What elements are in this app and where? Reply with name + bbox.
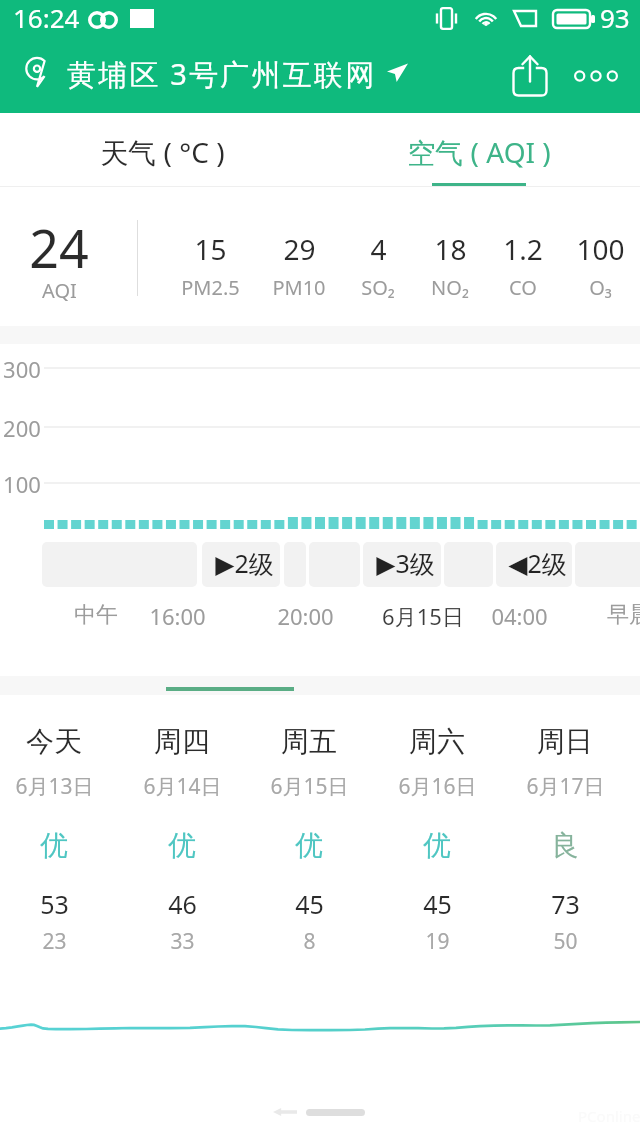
button[interactable]: 天气 ( °C ): [0, 113, 320, 187]
staticText: 周六: [409, 724, 465, 759]
staticText: O₃: [589, 274, 612, 301]
button[interactable]: [501, 700, 629, 965]
staticText: 16:24: [13, 0, 80, 35]
button[interactable]: [0, 700, 118, 965]
staticText: 24: [29, 212, 89, 283]
staticText: 53: [40, 887, 69, 921]
staticText: SO₂: [361, 274, 395, 301]
staticText: CO: [509, 274, 537, 301]
staticText: PM10: [272, 274, 326, 301]
staticText: 6月15日: [382, 601, 464, 631]
staticText: 周日: [537, 724, 593, 759]
staticText: 20:00: [277, 601, 334, 631]
staticText: 45: [295, 887, 324, 921]
staticText: 100: [3, 469, 41, 499]
button[interactable]: [245, 700, 373, 965]
button[interactable]: [118, 700, 246, 965]
staticText: 4: [370, 230, 387, 268]
staticText: 天气 ( °C ): [100, 133, 225, 171]
staticText: 1.2: [503, 230, 543, 268]
staticText: ◀2级: [508, 546, 567, 580]
staticText: 空气 ( AQI ): [407, 133, 551, 171]
staticText: NO₂: [431, 274, 469, 301]
staticText: 今天: [26, 724, 82, 759]
staticText: 16:00: [149, 601, 206, 631]
staticText: 29: [283, 230, 316, 268]
button[interactable]: Location: [17, 52, 57, 92]
staticText: 50: [553, 927, 578, 956]
staticText: 33: [170, 927, 195, 956]
staticText: 优: [295, 828, 323, 863]
button[interactable]: ▶3级: [363, 542, 441, 587]
staticText: 19: [425, 927, 450, 956]
staticText: AQI: [42, 277, 77, 304]
staticText: 45: [423, 887, 452, 921]
staticText: 周五: [281, 724, 337, 759]
staticText: 中午: [74, 601, 118, 629]
staticText: 优: [168, 828, 196, 863]
staticText: 6月16日: [398, 772, 477, 801]
staticText: 优: [40, 828, 68, 863]
staticText: 良: [551, 828, 579, 863]
staticText: 周四: [154, 724, 210, 759]
staticText: ▶2级: [215, 546, 274, 580]
staticText: 18: [434, 230, 467, 268]
staticText: 100: [576, 230, 625, 268]
staticText: 200: [3, 413, 41, 443]
button[interactable]: ▶2级: [202, 542, 280, 587]
button[interactable]: Home: [306, 1109, 365, 1116]
staticText: 8: [303, 927, 316, 956]
button[interactable]: 空气 ( AQI ): [320, 113, 640, 187]
staticText: 6月13日: [15, 772, 94, 801]
staticText: 黄埔区 3号广州互联网: [67, 54, 377, 94]
button[interactable]: ◀2级: [496, 542, 572, 587]
staticText: 23: [42, 927, 67, 956]
button[interactable]: Share: [506, 52, 554, 100]
staticText: 46: [168, 887, 197, 921]
staticText: 早晨: [607, 601, 640, 629]
staticText: PM2.5: [181, 274, 240, 301]
staticText: 15: [194, 230, 227, 268]
staticText: 300: [3, 354, 41, 384]
staticText: 93: [600, 0, 630, 35]
staticText: 6月14日: [143, 772, 222, 801]
staticText: 优: [423, 828, 451, 863]
staticText: 6月15日: [270, 772, 349, 801]
button[interactable]: More options: [572, 52, 620, 100]
staticText: 04:00: [491, 601, 548, 631]
button[interactable]: Back: [266, 1101, 304, 1123]
staticText: 6月17日: [526, 772, 605, 801]
staticText: 73: [551, 887, 580, 921]
staticText: ▶3级: [376, 546, 435, 580]
button[interactable]: [373, 700, 501, 965]
